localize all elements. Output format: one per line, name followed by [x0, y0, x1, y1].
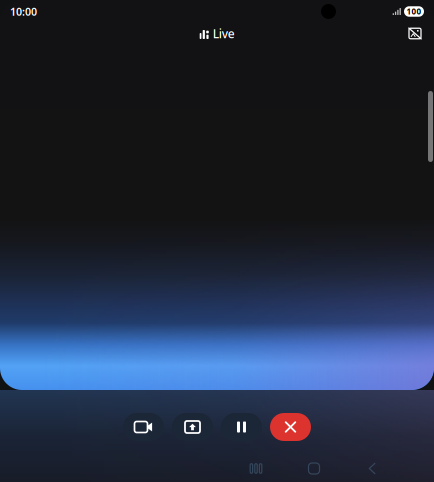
button[interactable]: Back [343, 455, 401, 482]
button[interactable]: Home [285, 455, 343, 482]
button[interactable]: Hide screen [402, 21, 428, 46]
staticText: 10:00 [10, 4, 37, 19]
button[interactable]: Share screen [172, 413, 213, 441]
button[interactable]: Camera [123, 413, 164, 441]
button[interactable]: Recent apps [227, 455, 285, 482]
staticText: 100 [406, 6, 421, 17]
staticText: Live [213, 25, 235, 41]
button[interactable]: End [270, 413, 311, 441]
button[interactable]: Pause [221, 413, 262, 441]
